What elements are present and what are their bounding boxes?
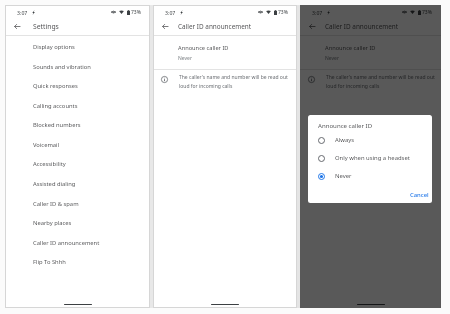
staticText: Calling accounts [33,102,78,110]
staticText: 73% [131,9,141,16]
staticText: Voicemail [33,141,60,149]
button[interactable]: Only when using a headset [318,149,430,167]
staticText: Caller ID announcement [325,22,399,31]
staticText: The caller's name and number will be rea… [326,74,435,89]
staticText: 3:07 [312,9,323,16]
button[interactable]: Announce caller ID [153,36,297,69]
staticText: Announce caller ID [178,44,229,52]
button[interactable]: Sounds and vibration [5,57,150,77]
button[interactable]: Caller ID & spam [5,194,150,214]
staticText: Caller ID announcement [33,239,100,247]
staticText: Cancel [410,191,429,199]
staticText: Caller ID announcement [178,22,252,31]
button[interactable]: Navigate up [153,18,178,35]
button[interactable]: Accessibility [5,154,150,174]
staticText: Never [335,172,352,180]
staticText: Accessibility [33,160,66,168]
button[interactable]: Navigate up [5,18,30,35]
button[interactable]: Display options [5,37,150,57]
button[interactable]: Flip To Shhh [5,252,150,272]
staticText: 3:07 [165,9,176,16]
button[interactable]: Announce caller ID [300,36,441,69]
staticText: 73% [422,9,432,16]
staticText: Quick responses [33,82,78,90]
button[interactable]: Assisted dialing [5,174,150,194]
button[interactable]: Caller ID announcement [5,233,150,253]
staticText: Flip To Shhh [33,258,66,266]
button[interactable]: Navigate up [300,18,325,35]
button[interactable]: Never [318,167,430,185]
staticText: Only when using a headset [335,154,410,162]
staticText: 73% [278,9,288,16]
staticText: Blocked numbers [33,121,81,129]
staticText: Settings [33,22,59,31]
staticText: The caller's name and number will be rea… [179,74,288,89]
staticText: Assisted dialing [33,180,76,188]
staticText: Announce caller ID [325,44,376,52]
staticText: Nearby places [33,219,72,227]
staticText: Announce caller ID [318,121,373,129]
staticText: Never [325,55,339,62]
staticText: Always [335,136,355,144]
button[interactable]: Cancel [409,190,430,200]
button[interactable]: Always [318,131,430,149]
button[interactable]: Quick responses [5,76,150,96]
button[interactable]: Calling accounts [5,96,150,116]
staticText: Caller ID & spam [33,200,79,208]
staticText: Never [178,55,192,62]
button[interactable]: Nearby places [5,213,150,233]
staticText: 3:07 [17,9,28,16]
button[interactable]: Voicemail [5,135,150,155]
staticText: Sounds and vibration [33,63,91,71]
button[interactable]: Blocked numbers [5,115,150,135]
staticText: Display options [33,43,75,51]
